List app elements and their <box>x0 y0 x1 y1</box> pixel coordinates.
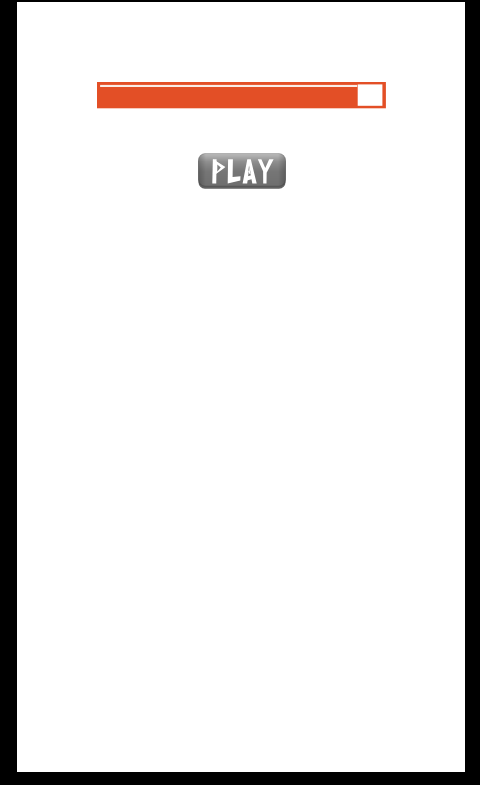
button[interactable]: Play <box>198 151 286 190</box>
